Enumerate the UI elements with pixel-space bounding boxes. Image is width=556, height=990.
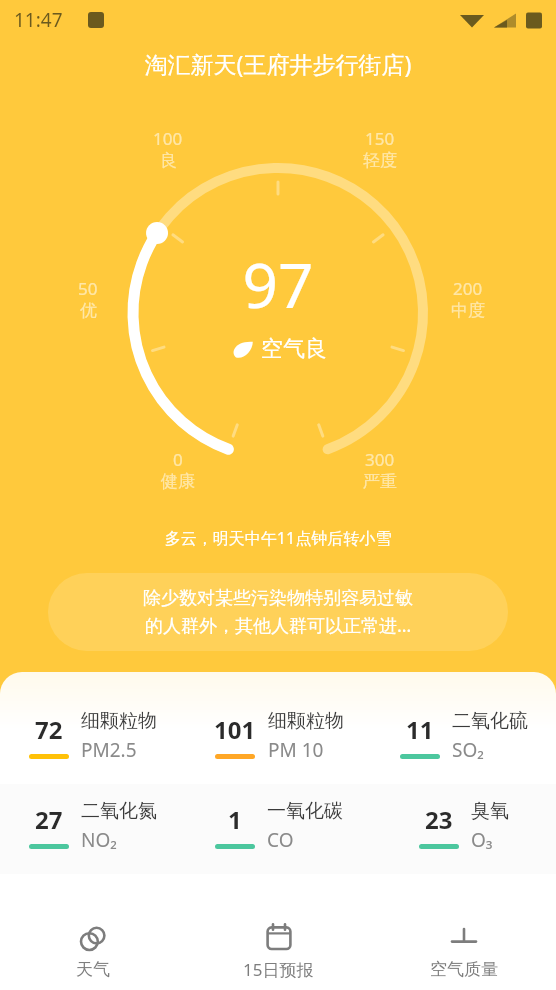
button[interactable]: 天气 (0, 912, 186, 990)
button[interactable]: 除少数对某些污染物特别容易过敏 的人群外，其他人群可以正常进… (48, 573, 508, 651)
staticText: 空气良 (261, 335, 327, 363)
staticText: 97 (0, 242, 556, 326)
staticText: 优 (80, 300, 97, 321)
staticText: 200 (453, 277, 483, 300)
staticText: 11 (406, 713, 434, 746)
staticText: 轻度 (363, 150, 397, 171)
staticText: 27 (35, 803, 63, 836)
button[interactable]: 11 (371, 694, 556, 778)
staticText: 50 (78, 277, 98, 300)
staticText: 空气质量 (430, 959, 498, 980)
staticText: 臭氧 (471, 799, 509, 823)
button[interactable]: 27 (0, 784, 186, 868)
staticText: 一氧化碳 (267, 799, 343, 823)
staticText: 150 (365, 127, 395, 150)
staticText: 11:47 (14, 7, 63, 33)
staticText: 二氧化氮 (81, 799, 157, 823)
staticText: 细颗粒物 (268, 709, 344, 733)
staticText: 健康 (161, 471, 195, 492)
button[interactable]: 23 (371, 784, 556, 868)
staticText: 淘汇新天(王府井步行街店) (0, 48, 556, 79)
staticText: 1 (228, 803, 242, 836)
staticText: 细颗粒物 (81, 709, 157, 733)
staticText: 多云，明天中午11点钟后转小雪 (0, 527, 556, 549)
staticText: 300 (365, 448, 395, 471)
staticText: O₃ (471, 827, 493, 853)
staticText: 0 (173, 448, 183, 471)
button[interactable]: 15日预报 (186, 912, 371, 990)
staticText: 15日预报 (243, 958, 314, 981)
staticText: SO₂ (452, 737, 484, 763)
staticText: 101 (214, 713, 256, 746)
staticText: 72 (35, 713, 63, 746)
staticText: CO (267, 827, 294, 853)
staticText: 严重 (363, 471, 397, 492)
staticText: 23 (425, 803, 453, 836)
button[interactable]: 101 (186, 694, 371, 778)
button[interactable]: 1 (186, 784, 371, 868)
staticText: 100 (153, 127, 183, 150)
staticText: NO₂ (81, 827, 117, 853)
staticText: PM 10 (268, 737, 324, 763)
staticText: PM2.5 (81, 737, 137, 763)
staticText: 二氧化硫 (452, 709, 528, 733)
staticText: 天气 (76, 959, 110, 980)
staticText: 中度 (451, 300, 485, 321)
button[interactable]: 72 (0, 694, 186, 778)
button[interactable]: 空气质量 (371, 912, 556, 990)
staticText: 除少数对某些污染物特别容易过敏 的人群外，其他人群可以正常进… (143, 587, 413, 638)
staticText: 良 (160, 150, 177, 171)
